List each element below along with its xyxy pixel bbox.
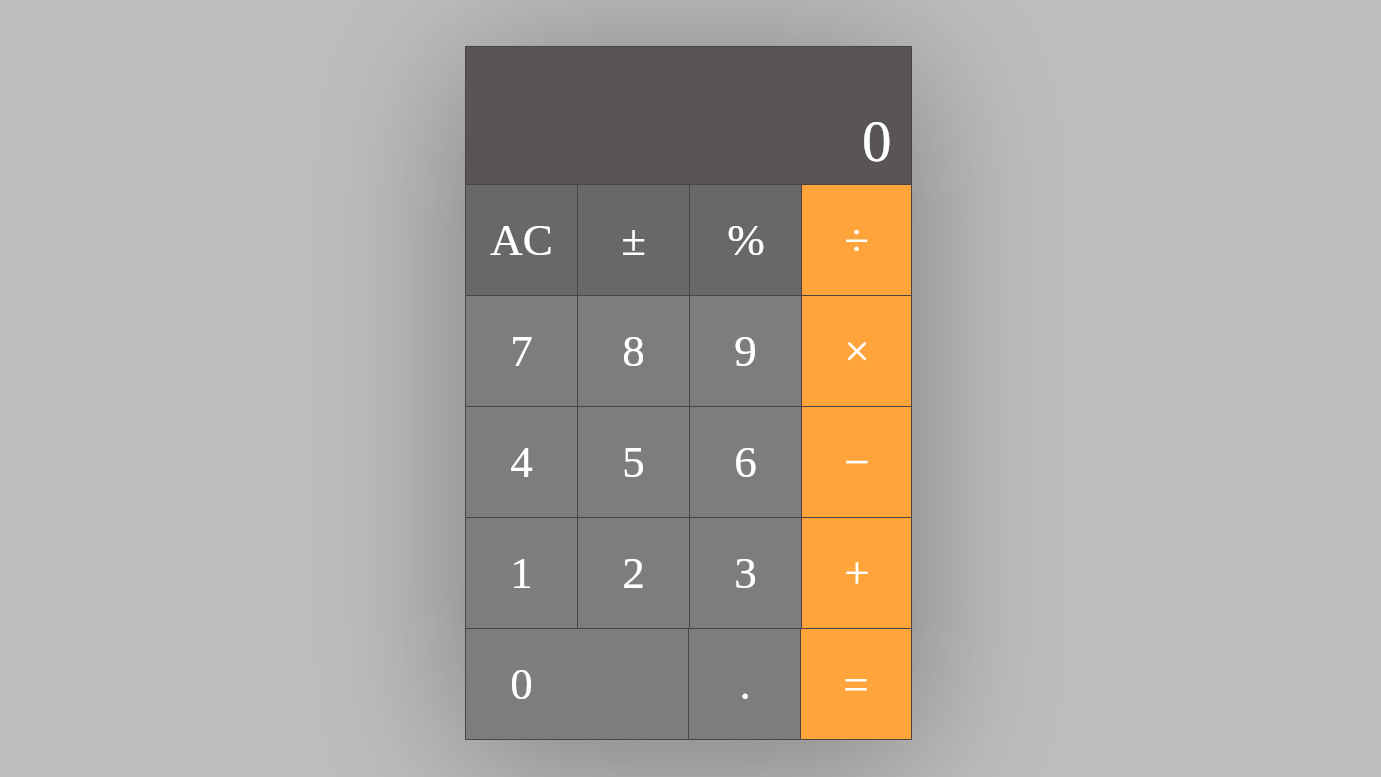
staticText: . <box>739 659 751 709</box>
button[interactable]: Subtract <box>802 407 911 517</box>
button[interactable]: Add <box>802 518 911 628</box>
staticText: 3 <box>734 548 757 598</box>
staticText: − <box>844 437 870 487</box>
button[interactable]: Divide <box>802 185 911 295</box>
button[interactable]: All clear <box>466 185 577 295</box>
staticText: 2 <box>622 548 645 598</box>
button[interactable]: Equals <box>801 629 911 739</box>
button[interactable]: Plus minus sign <box>578 185 689 295</box>
button[interactable]: Three <box>690 518 801 628</box>
button[interactable]: One <box>466 518 577 628</box>
staticText: 1 <box>510 548 533 598</box>
staticText: 0 <box>510 659 533 709</box>
staticText: 4 <box>510 437 533 487</box>
staticText: 7 <box>510 326 533 376</box>
staticText: ± <box>621 215 646 265</box>
button[interactable]: Nine <box>690 296 801 406</box>
staticText: 5 <box>622 437 645 487</box>
button[interactable]: Eight <box>578 296 689 406</box>
staticText: AC <box>490 215 553 265</box>
staticText: × <box>844 326 870 376</box>
button[interactable]: Two <box>578 518 689 628</box>
button[interactable]: Seven <box>466 296 577 406</box>
button[interactable]: Zero <box>466 629 688 739</box>
button[interactable]: Percent <box>690 185 801 295</box>
staticText: 9 <box>734 326 757 376</box>
button[interactable]: Multiply <box>802 296 911 406</box>
staticText: = <box>843 659 869 709</box>
button[interactable]: Five <box>578 407 689 517</box>
button[interactable]: Four <box>466 407 577 517</box>
staticText: % <box>727 215 765 265</box>
staticText: + <box>844 548 870 598</box>
staticText: 8 <box>622 326 645 376</box>
staticText: ÷ <box>844 215 869 265</box>
button[interactable]: Six <box>690 407 801 517</box>
staticText: 0 <box>862 108 892 173</box>
staticText: 6 <box>734 437 757 487</box>
button[interactable]: Decimal point <box>689 629 800 739</box>
